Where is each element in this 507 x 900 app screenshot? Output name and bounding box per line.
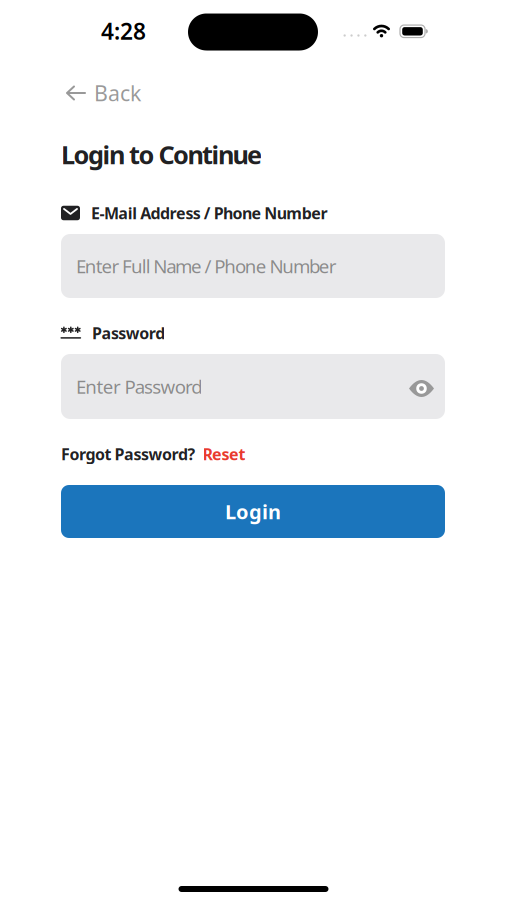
button[interactable]: Enter Password [61, 354, 445, 419]
staticText: Forgot Password? [61, 443, 195, 465]
staticText: Reset [202, 443, 245, 465]
staticText: E-Mail Address / Phone Number [91, 202, 328, 224]
staticText: Enter Password [76, 374, 202, 399]
staticText: Back [94, 79, 141, 107]
button[interactable]: Reset [202, 443, 245, 465]
button[interactable]: Login [61, 485, 445, 538]
staticText: Login to Continue [61, 138, 262, 171]
staticText: Login [225, 498, 281, 525]
button[interactable]: Back [66, 79, 141, 107]
staticText: Enter Full Name / Phone Number [76, 254, 337, 278]
button[interactable]: Show password [401, 372, 442, 405]
button[interactable]: Enter Full Name / Phone Number [61, 234, 445, 298]
staticText: Password [92, 322, 165, 344]
staticText: 4:28 [101, 16, 146, 46]
